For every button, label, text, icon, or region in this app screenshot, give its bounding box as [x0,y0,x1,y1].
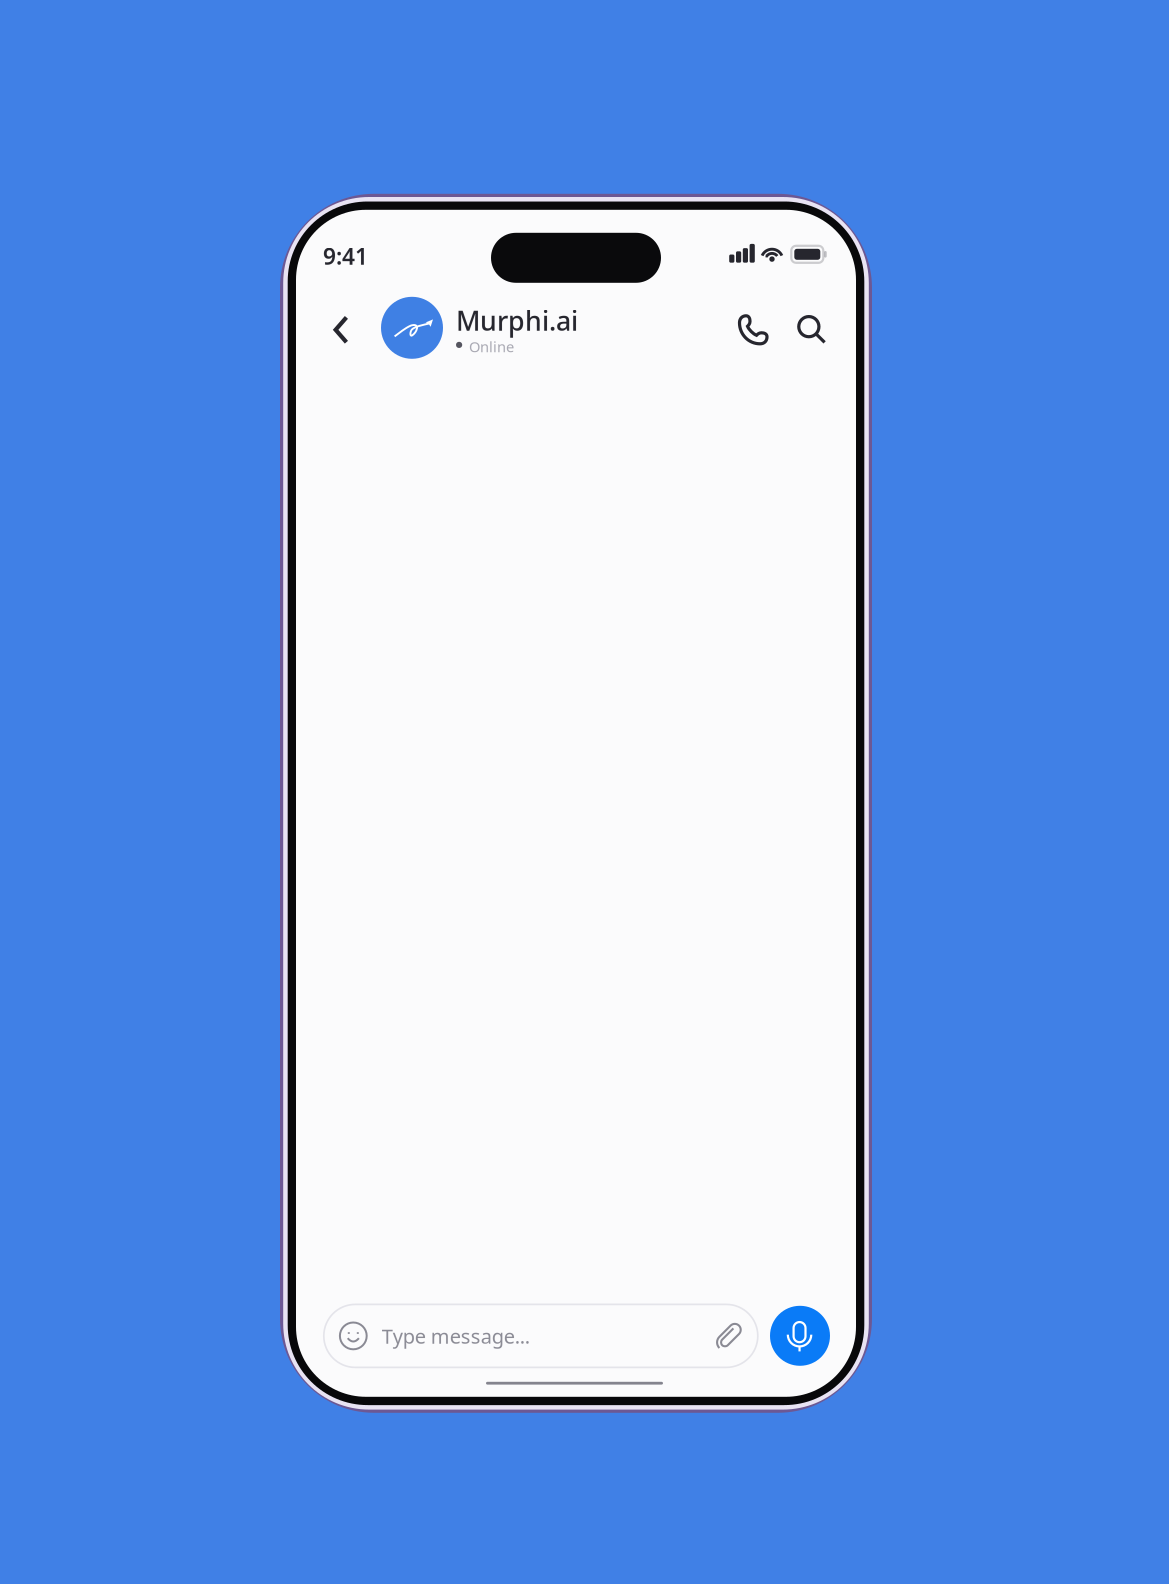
staticText: Online [469,337,514,356]
staticText: Murphi.ai [456,303,578,338]
button[interactable]: Record voice message [770,1306,830,1366]
button[interactable]: Type message... [324,1304,758,1367]
button[interactable]: Murphi.ai [296,210,856,410]
button[interactable]: Search [786,304,838,356]
button[interactable]: Back [318,305,364,355]
staticText: 9:41 [323,241,368,271]
staticText: Type message... [382,1323,530,1349]
button[interactable]: Call [727,304,779,356]
